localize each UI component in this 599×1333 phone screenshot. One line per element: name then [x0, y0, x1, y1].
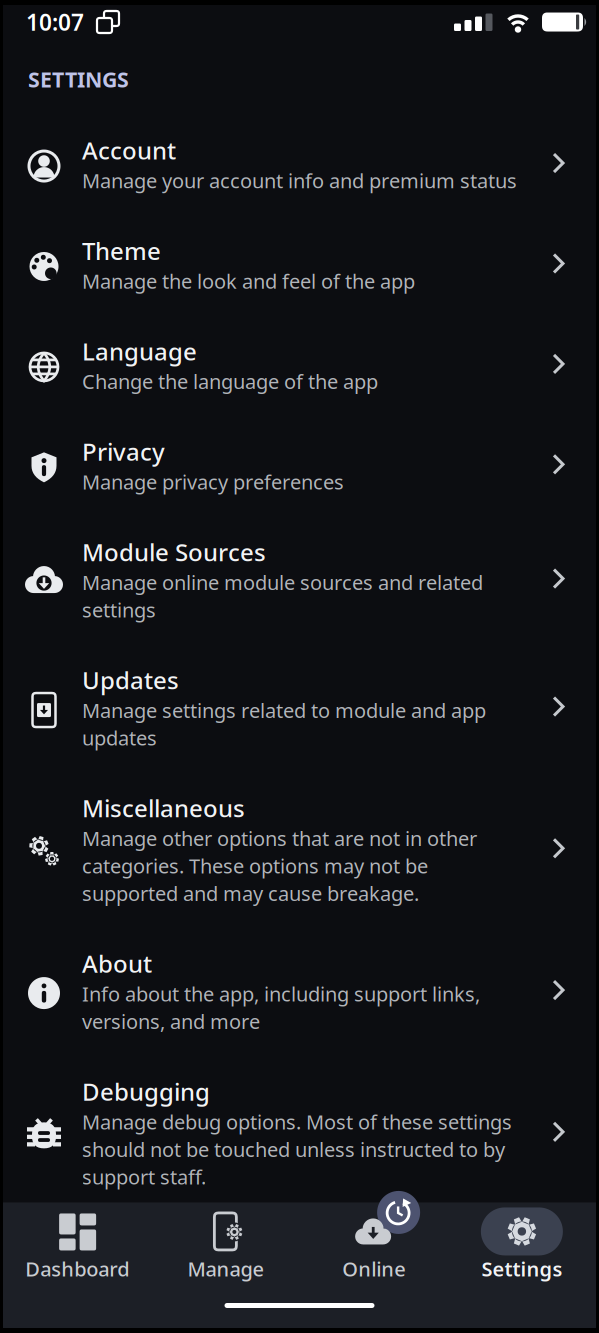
staticText: Debugging: [82, 1076, 210, 1107]
staticText: Account: [82, 134, 176, 166]
staticText: should not be touched unless instructed …: [82, 1136, 505, 1163]
staticText: Dashboard: [25, 1255, 129, 1282]
staticText: Miscellaneous: [82, 792, 245, 824]
button[interactable]: Dashboard: [3, 1207, 151, 1282]
staticText: Info about the app, including support li…: [82, 980, 480, 1007]
staticText: Language: [82, 335, 197, 367]
button[interactable]: Theme: [3, 235, 596, 294]
staticText: Privacy: [82, 436, 165, 467]
staticText: Manage other options that are not in oth…: [82, 825, 477, 851]
staticText: Manage the look and feel of the app: [82, 268, 415, 294]
staticText: versions, and more: [82, 1008, 260, 1035]
button[interactable]: About: [3, 948, 596, 1035]
staticText: Online: [342, 1255, 405, 1282]
staticText: Manage online module sources and related: [82, 569, 483, 595]
button[interactable]: Miscellaneous: [3, 792, 596, 907]
staticText: categories. These options may not be: [82, 852, 428, 879]
staticText: Manage settings related to module and ap…: [82, 697, 486, 723]
button[interactable]: Account: [3, 134, 596, 194]
staticText: Change the language of the app: [82, 368, 378, 395]
staticText: support staff.: [82, 1164, 206, 1190]
staticText: Manage your account info and premium sta…: [82, 167, 517, 194]
button[interactable]: Privacy: [3, 436, 596, 495]
staticText: About: [82, 948, 152, 979]
staticText: updates: [82, 724, 157, 751]
staticText: Theme: [82, 235, 161, 267]
button[interactable]: Language: [3, 335, 596, 395]
button[interactable]: Updates: [3, 664, 596, 751]
staticText: Settings: [481, 1255, 562, 1282]
staticText: Manage privacy preferences: [82, 468, 344, 495]
staticText: SETTINGS: [28, 65, 129, 93]
staticText: Manage debug options. Most of these sett…: [82, 1108, 512, 1135]
staticText: 10:07: [26, 7, 84, 37]
staticText: Updates: [82, 664, 179, 696]
button[interactable]: Debugging: [3, 1076, 596, 1190]
button[interactable]: Settings: [448, 1207, 596, 1282]
staticText: Module Sources: [82, 536, 266, 568]
staticText: Manage: [187, 1255, 263, 1282]
staticText: supported and may cause breakage.: [82, 880, 419, 907]
button[interactable]: Online: [299, 1207, 448, 1282]
staticText: settings: [82, 596, 156, 623]
button[interactable]: Manage: [151, 1207, 299, 1282]
button[interactable]: Module Sources: [3, 536, 596, 623]
